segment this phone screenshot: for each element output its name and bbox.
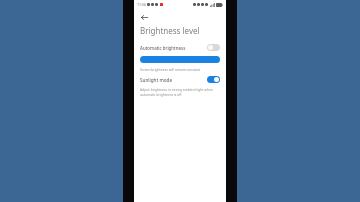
- button[interactable]: Toggle on: [207, 76, 220, 83]
- staticText: Adjust brightness in strong ambient ligh…: [140, 87, 213, 97]
- button[interactable]: Toggle off: [207, 44, 220, 51]
- button[interactable]: Automatic brightness: [134, 42, 226, 53]
- staticText: Screen brightness will remain constant: [140, 67, 201, 71]
- staticText: Sunlight mode: [140, 77, 173, 83]
- staticText: Automatic brightness: [140, 45, 186, 51]
- button[interactable]: Back: [138, 11, 150, 23]
- button[interactable]: Brightness slider: [140, 56, 220, 63]
- staticText: Brightness level: [140, 25, 200, 36]
- staticText: 11:34: [137, 2, 146, 7]
- button[interactable]: Sunlight mode: [134, 74, 226, 85]
